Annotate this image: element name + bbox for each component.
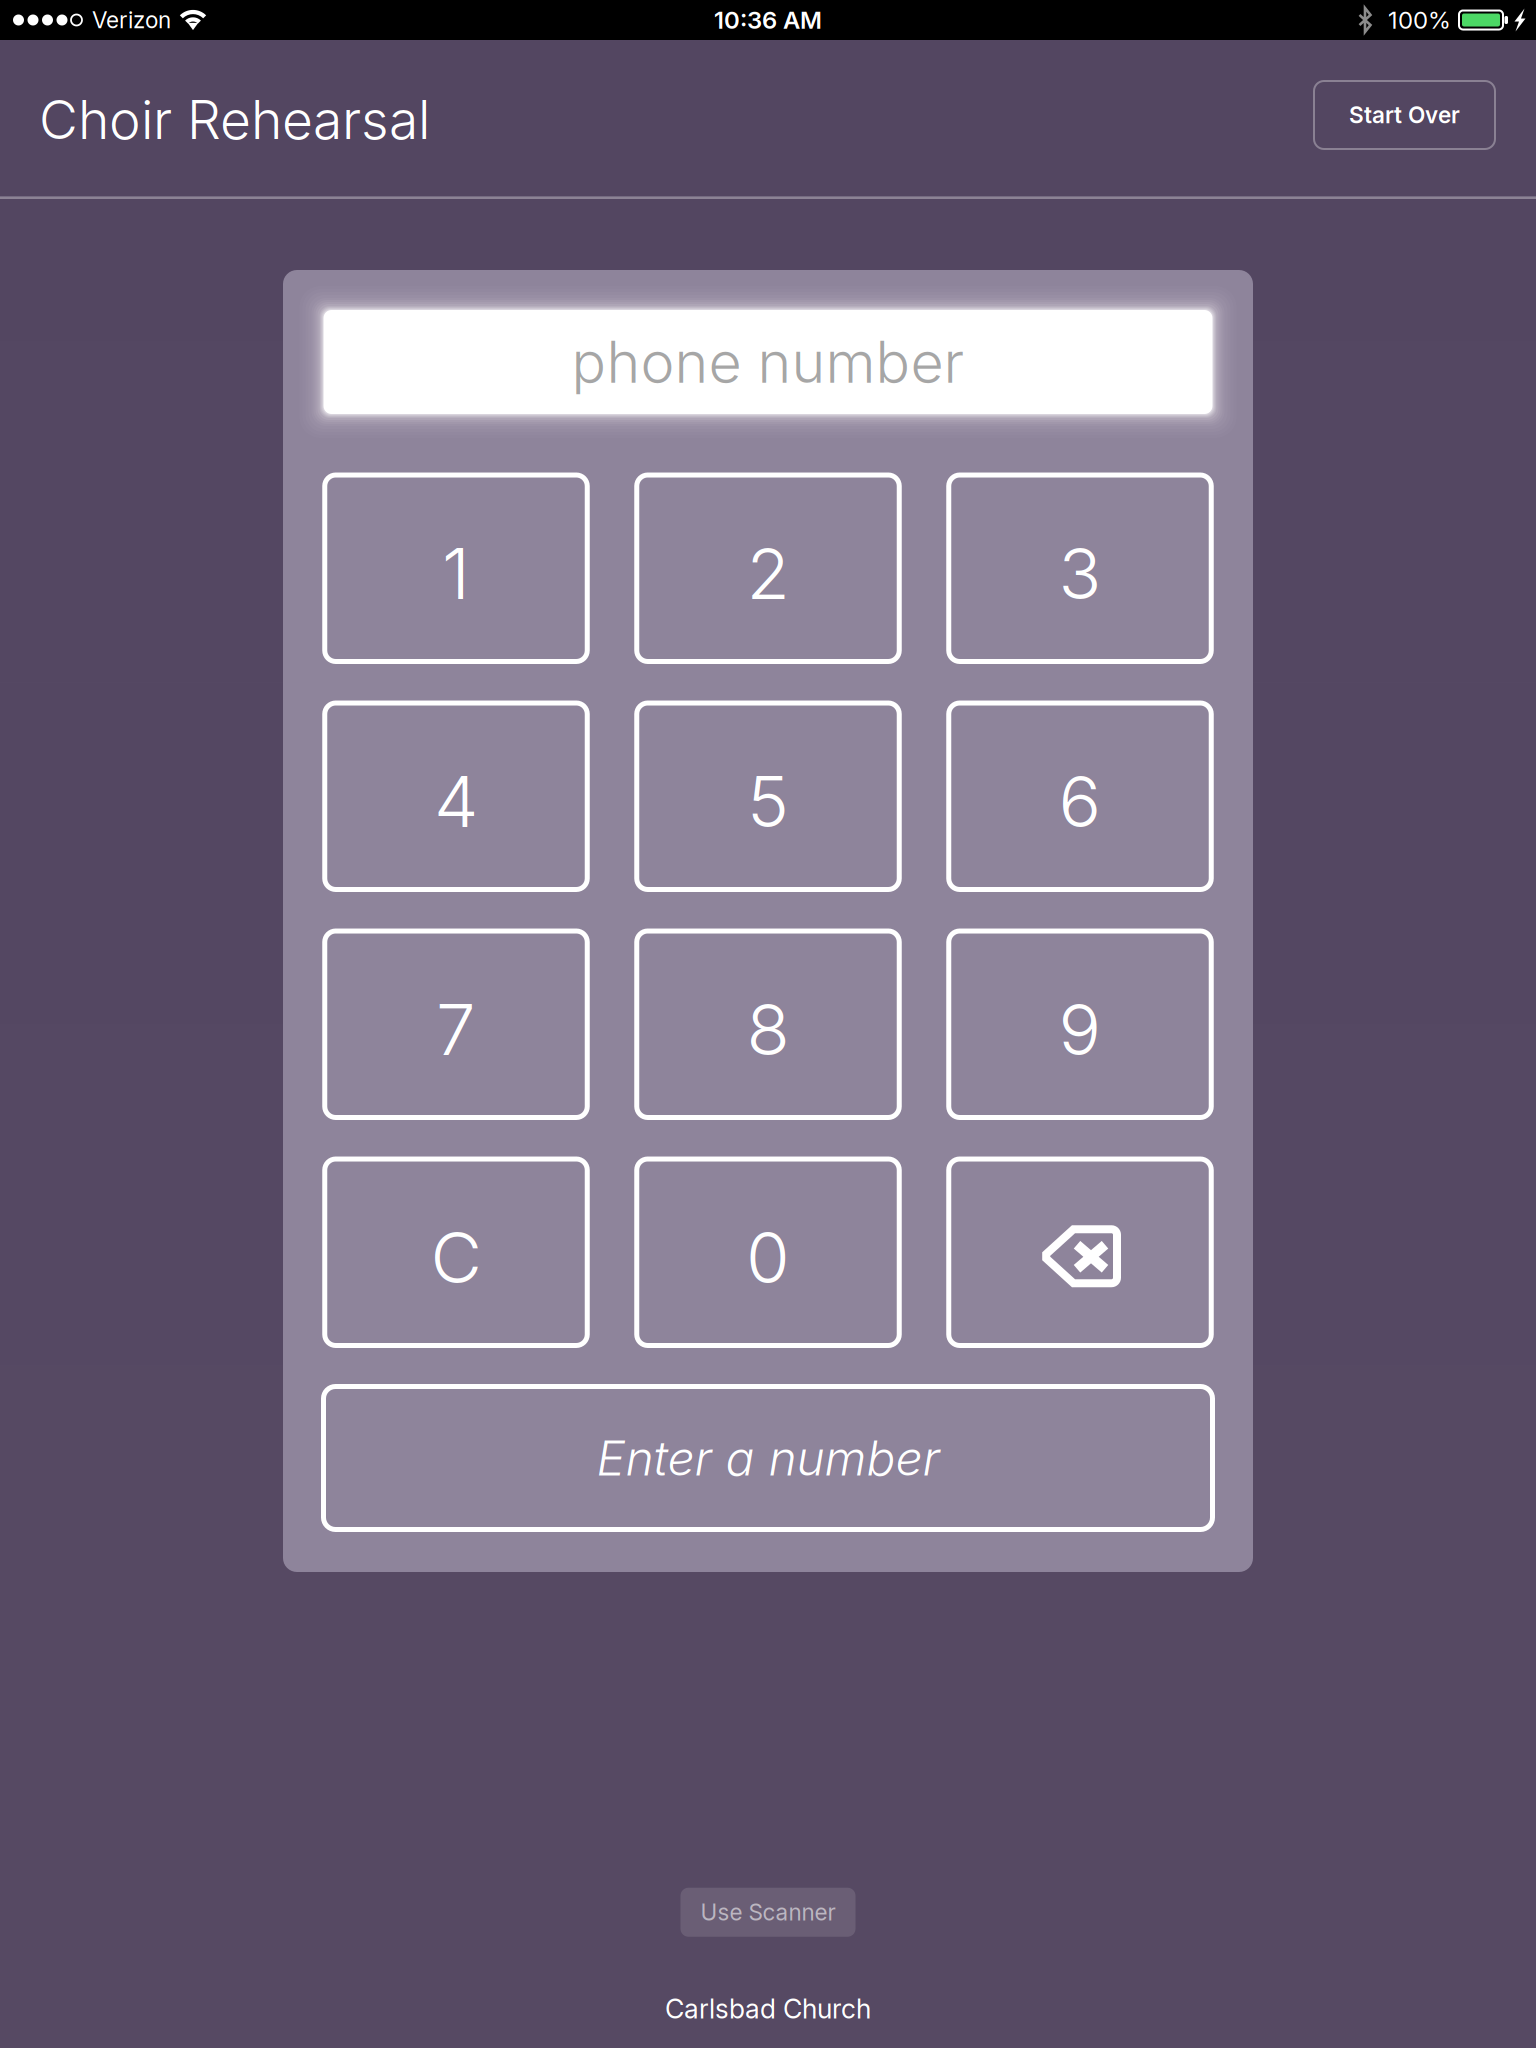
staticText: 1 [442, 530, 470, 616]
staticText: 7 [436, 986, 476, 1072]
button[interactable]: 5 [637, 703, 899, 889]
staticText: Use Scanner [700, 1898, 835, 1926]
button[interactable]: C [325, 1159, 587, 1345]
staticText: phone number [571, 327, 964, 397]
staticText: 4 [434, 758, 478, 844]
button[interactable]: 9 [949, 931, 1211, 1117]
button[interactable]: 3 [949, 475, 1211, 661]
staticText: 8 [746, 986, 789, 1072]
button[interactable]: 7 [325, 931, 587, 1117]
staticText: 10:36 AM [714, 5, 822, 34]
staticText: Enter a number [596, 1429, 939, 1487]
button[interactable]: Start Over [1314, 81, 1495, 149]
staticText: C [430, 1214, 481, 1300]
staticText: 2 [746, 530, 789, 616]
button[interactable]: Enter a number [323, 1386, 1212, 1529]
button[interactable]: 2 [637, 475, 899, 661]
staticText: Carlsbad Church [665, 1993, 871, 2025]
staticText: Choir Rehearsal [39, 87, 430, 152]
button[interactable]: 6 [949, 703, 1211, 889]
staticText: 6 [1058, 758, 1101, 844]
button[interactable]: 1 [325, 475, 587, 661]
staticText: Start Over [1349, 101, 1460, 129]
button[interactable]: 0 [637, 1159, 899, 1345]
button[interactable]: 8 [637, 931, 899, 1117]
button[interactable]: Use Scanner [680, 1888, 855, 1937]
staticText: Verizon [92, 6, 171, 34]
staticText: 5 [747, 758, 789, 844]
staticText: 3 [1058, 530, 1101, 616]
button[interactable]: Delete [949, 1159, 1211, 1345]
staticText: 9 [1058, 986, 1101, 1072]
staticText: 0 [746, 1214, 790, 1300]
button[interactable]: 4 [325, 703, 587, 889]
staticText: 100% [1388, 5, 1451, 34]
